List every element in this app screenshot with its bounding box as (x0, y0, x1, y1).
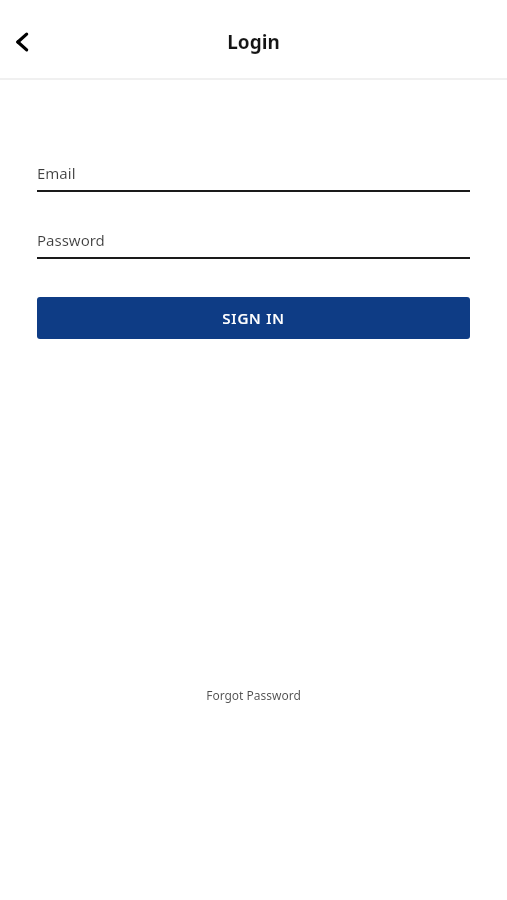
button[interactable]: Email (37, 163, 470, 192)
button[interactable]: SIGN IN (37, 297, 470, 339)
staticText: Email (37, 163, 76, 183)
button[interactable]: Back (4, 22, 44, 62)
button[interactable]: Password (37, 230, 470, 259)
button[interactable]: Forgot Password (196, 683, 311, 707)
staticText: Login (227, 29, 280, 55)
staticText: Password (37, 230, 105, 250)
staticText: SIGN IN (222, 308, 285, 328)
staticText: Forgot Password (206, 687, 301, 703)
